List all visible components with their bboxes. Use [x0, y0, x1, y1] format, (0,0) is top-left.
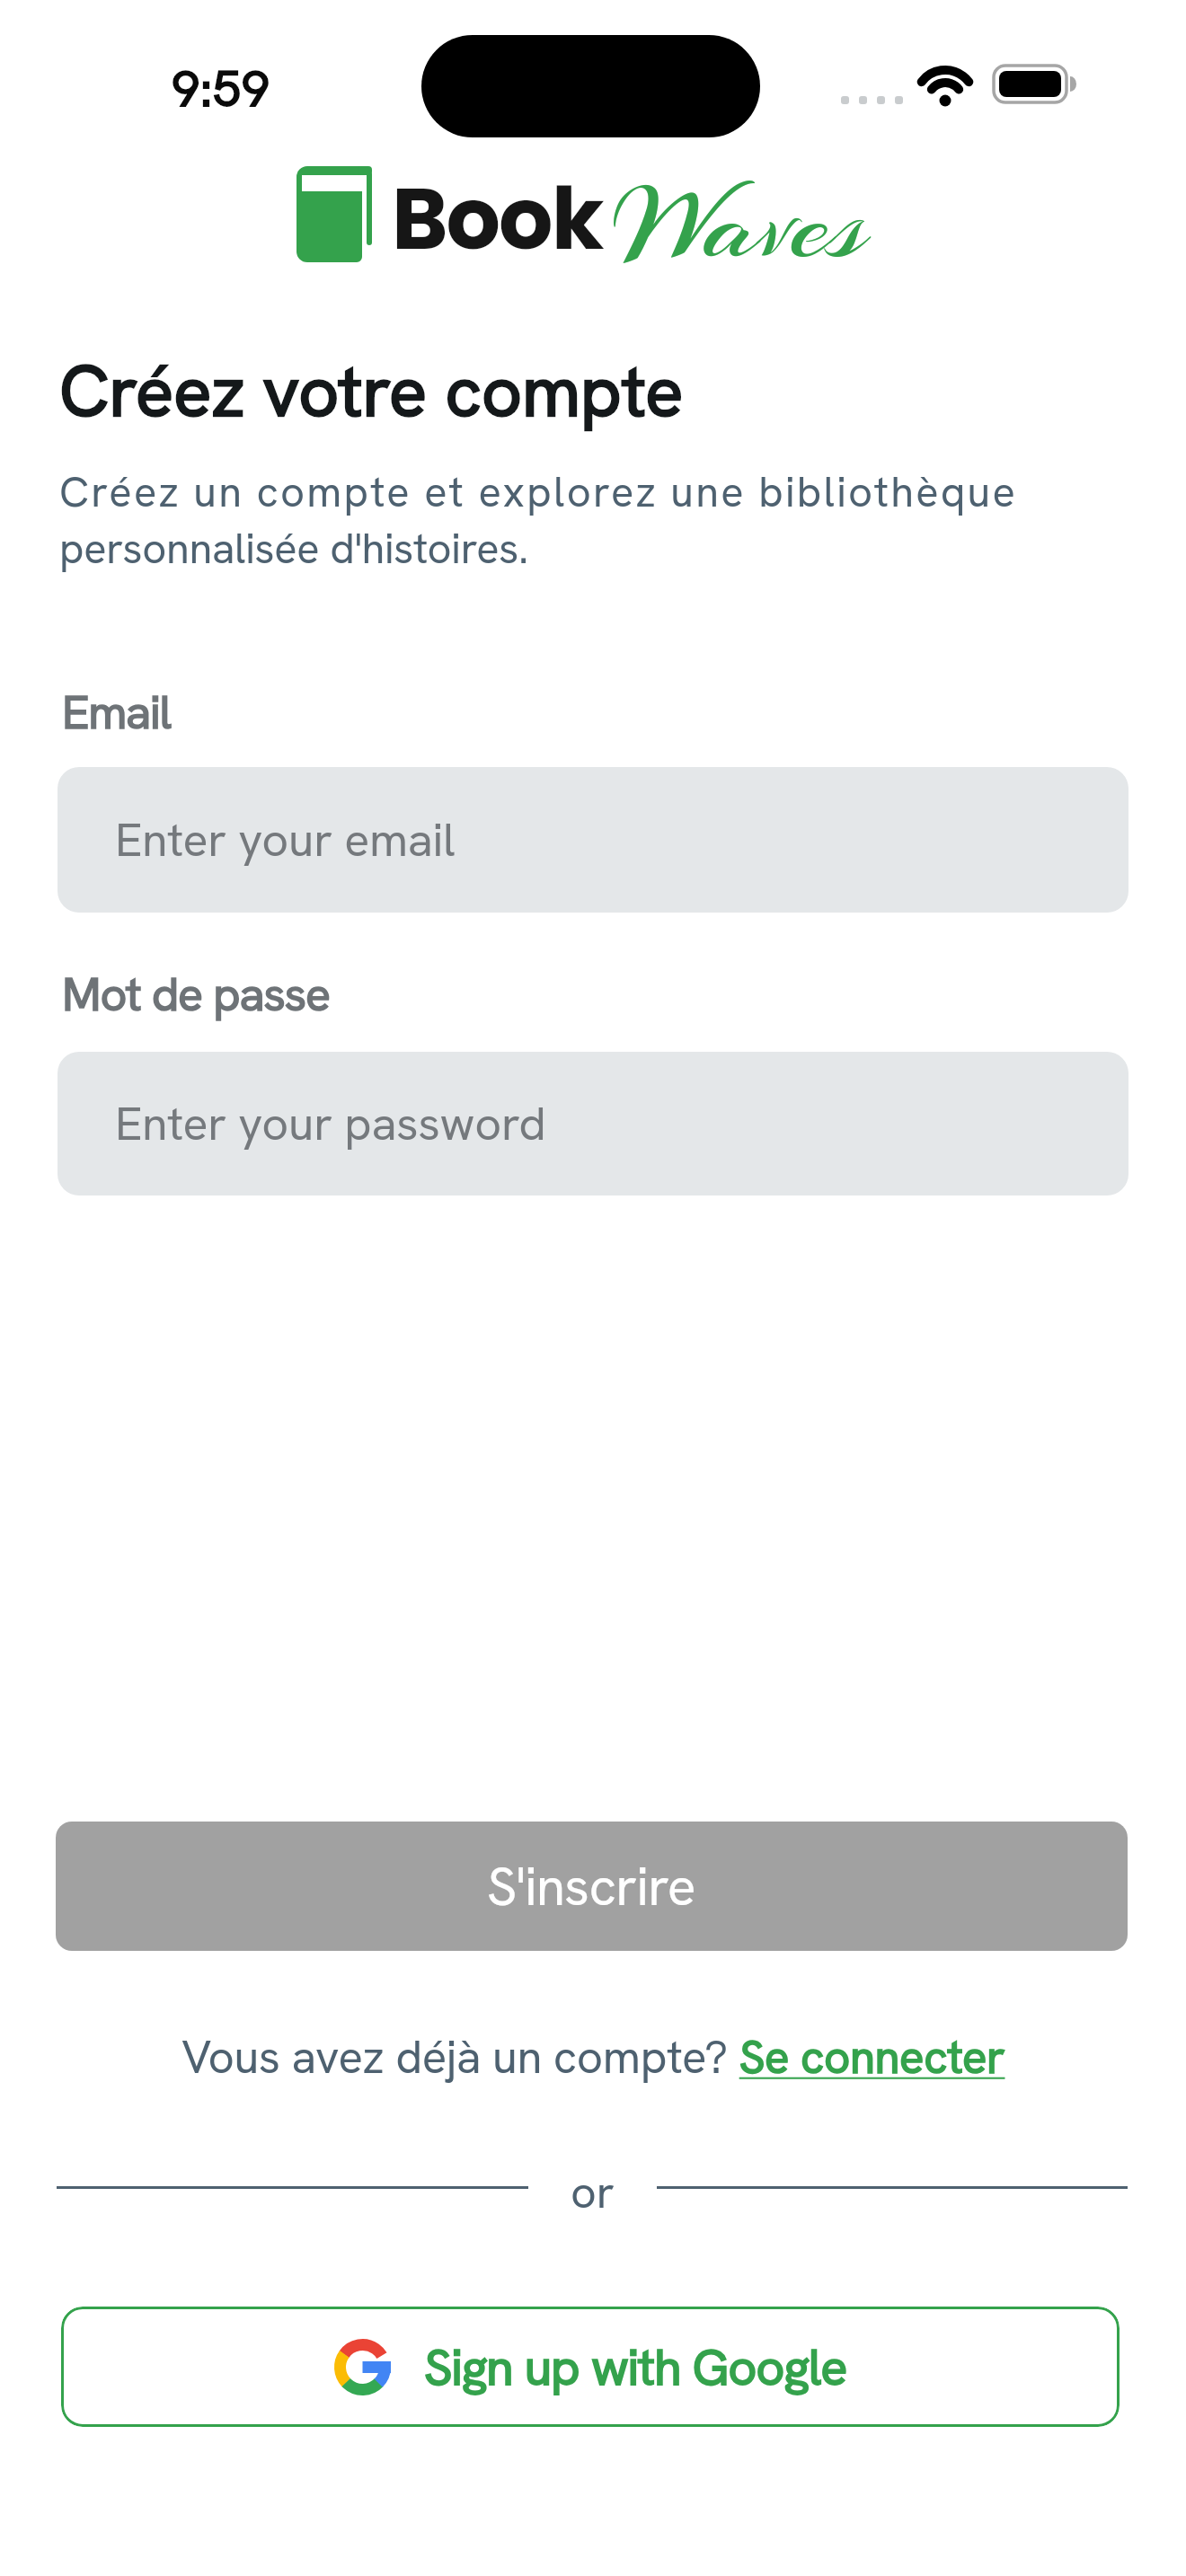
staticText: S'inscrire	[487, 1852, 696, 1921]
staticText: Book	[392, 159, 603, 278]
staticText: Enter your password	[115, 1093, 546, 1154]
staticText: or	[571, 2163, 615, 2221]
staticText: Enter your email	[115, 809, 456, 870]
staticText: Mot de passe	[62, 964, 330, 1025]
staticText: 9:59	[172, 56, 270, 121]
staticText: personnalisée d'histoires.	[59, 521, 529, 576]
button[interactable]: Vous avez déjà un compte? Se connecter	[181, 2027, 1005, 2086]
staticText: Waves	[613, 154, 866, 296]
button[interactable]: Enter your password	[58, 1052, 1128, 1195]
staticText: Sign up with Google	[424, 2334, 847, 2400]
staticText: Email	[62, 682, 172, 743]
button[interactable]: S'inscrire	[56, 1822, 1128, 1951]
staticText: Créez votre compte	[59, 345, 684, 437]
button[interactable]: Enter your email	[58, 767, 1128, 913]
staticText: Créez un compte et explorez une biblioth…	[59, 464, 1018, 519]
button[interactable]: Sign up with Google	[61, 2307, 1120, 2427]
